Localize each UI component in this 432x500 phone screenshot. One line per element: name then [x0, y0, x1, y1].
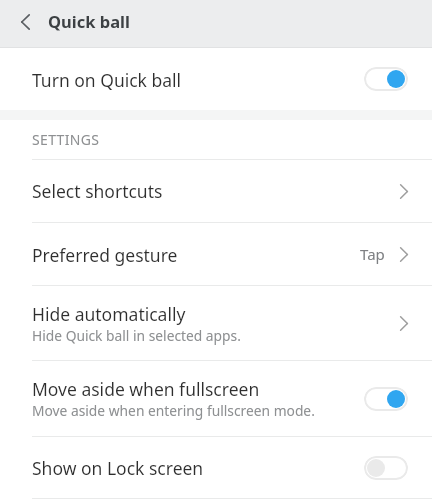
staticText: Tap: [360, 244, 385, 264]
staticText: SETTINGS: [32, 130, 100, 149]
button[interactable]: Switch on: [364, 387, 408, 411]
button[interactable]: Hide automatically: [0, 286, 432, 360]
button[interactable]: Switch on: [364, 67, 408, 91]
button[interactable]: Preferred gesture: [0, 223, 432, 285]
button[interactable]: Select shortcuts: [0, 160, 432, 222]
button[interactable]: Show on Lock screen: [0, 437, 432, 498]
staticText: Move aside when entering fullscreen mode…: [32, 401, 315, 420]
staticText: Preferred gesture: [32, 243, 360, 267]
button[interactable]: Switch off: [364, 456, 408, 480]
button[interactable]: Navigate up: [0, 0, 48, 47]
staticText: Move aside when fullscreen: [32, 377, 260, 401]
button[interactable]: Move aside when fullscreen: [0, 361, 432, 436]
staticText: Hide Quick ball in selected apps.: [32, 326, 241, 345]
staticText: Select shortcuts: [32, 179, 400, 203]
button[interactable]: Turn on Quick ball: [0, 48, 432, 110]
staticText: Turn on Quick ball: [32, 68, 364, 92]
staticText: Quick ball: [48, 10, 130, 32]
staticText: Show on Lock screen: [32, 456, 364, 480]
staticText: Hide automatically: [32, 302, 186, 326]
